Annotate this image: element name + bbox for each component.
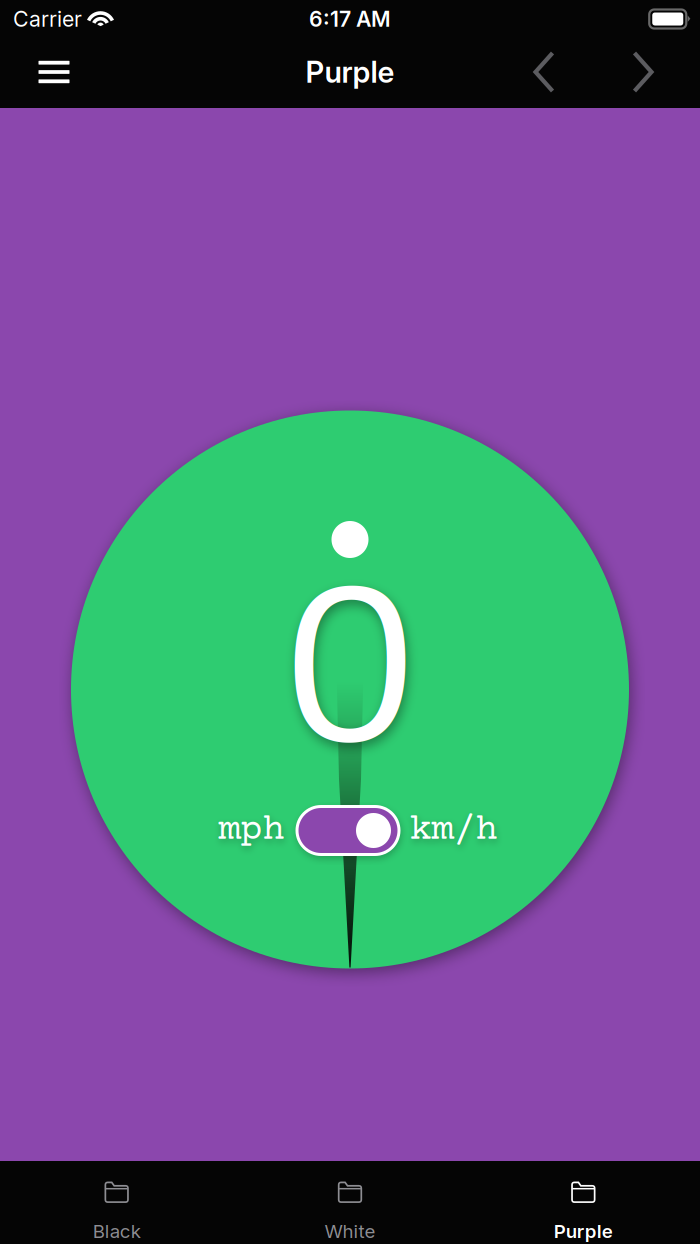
button[interactable]: Black xyxy=(0,1161,233,1244)
button[interactable]: White xyxy=(233,1161,467,1244)
staticText: Carrier xyxy=(13,6,82,32)
staticText: mph xyxy=(218,809,284,851)
button[interactable]: Next xyxy=(615,40,671,104)
staticText: Purple xyxy=(554,1220,613,1243)
button[interactable]: Menu xyxy=(23,40,85,104)
staticText: km/h xyxy=(409,809,497,851)
staticText: 6:17 AM xyxy=(309,6,391,32)
staticText: White xyxy=(324,1220,375,1243)
staticText: Purple xyxy=(305,54,394,90)
button[interactable]: Switch units xyxy=(295,805,400,856)
button[interactable]: Previous xyxy=(516,40,572,104)
staticText: 0 xyxy=(280,536,420,799)
staticText: Black xyxy=(93,1220,141,1243)
button[interactable]: Purple xyxy=(467,1161,700,1244)
